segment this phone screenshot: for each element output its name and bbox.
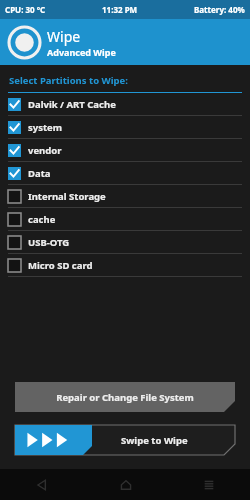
button[interactable]: USB-OTG: [0, 231, 250, 254]
staticText: Select Partitions to Wipe:: [9, 74, 128, 87]
staticText: Swipe to Wipe: [121, 434, 188, 447]
button[interactable]: Micro SD card: [0, 254, 250, 277]
staticText: Micro SD card: [28, 259, 93, 272]
staticText: vendor: [28, 144, 62, 157]
button[interactable]: system: [0, 116, 250, 139]
staticText: system: [28, 121, 63, 134]
staticText: Wipe: [47, 27, 81, 46]
button[interactable]: Internal Storage: [0, 185, 250, 208]
staticText: Advanced Wipe: [47, 46, 116, 58]
button[interactable]: Dalvik / ART Cache: [0, 93, 250, 116]
button[interactable]: Data: [0, 162, 250, 185]
other: TWRP logo: [9, 27, 40, 58]
staticText: CPU: 30 °C: [5, 4, 46, 15]
button[interactable]: vendor: [0, 139, 250, 162]
button[interactable]: Swipe to Wipe: [15, 425, 235, 455]
staticText: Internal Storage: [28, 190, 106, 203]
staticText: Dalvik / ART Cache: [28, 98, 116, 111]
button[interactable]: Home: [84, 469, 167, 500]
button[interactable]: Back: [0, 469, 84, 500]
staticText: Repair or Change File System: [56, 391, 194, 404]
staticText: Data: [28, 167, 51, 180]
staticText: Battery: 40%: [194, 4, 245, 15]
staticText: cache: [28, 213, 56, 226]
staticText: USB-OTG: [28, 236, 70, 249]
staticText: 11:32 PM: [102, 4, 138, 15]
button[interactable]: Repair or Change File System: [15, 382, 235, 412]
button[interactable]: Recent apps: [167, 469, 250, 500]
button[interactable]: cache: [0, 208, 250, 231]
